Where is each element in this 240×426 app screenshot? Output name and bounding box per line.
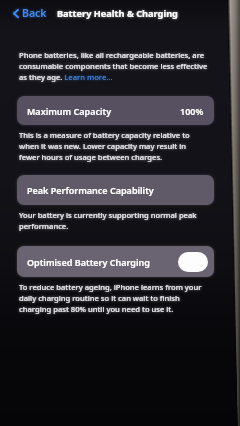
staticText: Optimised Battery Charging [27,256,150,268]
button[interactable]: Peak Performance Capability [17,175,214,205]
staticText: Maximum Capacity [27,105,112,117]
button[interactable]: Back [11,3,49,23]
staticText: To reduce battery ageing, iPhone learns … [19,282,202,314]
staticText: Your battery is currently supporting nor… [19,210,197,231]
staticText: Battery Health & Charging [57,7,178,20]
staticText: This is a measure of battery capacity re… [19,130,190,162]
staticText: This is a measure of battery capacity re… [19,130,190,162]
button[interactable]: Maximum Capacity [17,96,214,125]
staticText: 100% [180,105,204,117]
button[interactable]: Optimised Battery Charging toggle [178,252,208,272]
staticText: Back [22,6,47,20]
staticText: Phone batteries, like all rechargeable b… [19,50,208,82]
button[interactable]: Back [11,3,49,23]
staticText: Battery Health & Charging [57,7,178,20]
staticText: Your battery is currently supporting nor… [19,210,197,231]
staticText: To reduce battery ageing, iPhone learns … [19,282,202,314]
staticText: Back [22,6,47,20]
staticText: Peak Performance Capability [27,184,154,196]
staticText: Phone batteries, like all rechargeable b… [19,50,208,82]
button[interactable]: Optimised Battery Charging [17,246,214,277]
button[interactable]: Peak Performance Capability [17,175,214,205]
button[interactable]: Maximum Capacity [17,96,214,125]
button[interactable]: Optimised Battery Charging [17,246,214,277]
staticText: 100% [180,105,204,117]
staticText: Maximum Capacity [27,105,112,117]
staticText: Optimised Battery Charging [27,256,150,268]
staticText: Peak Performance Capability [27,184,154,196]
button[interactable]: Optimised Battery Charging toggle [178,252,208,272]
